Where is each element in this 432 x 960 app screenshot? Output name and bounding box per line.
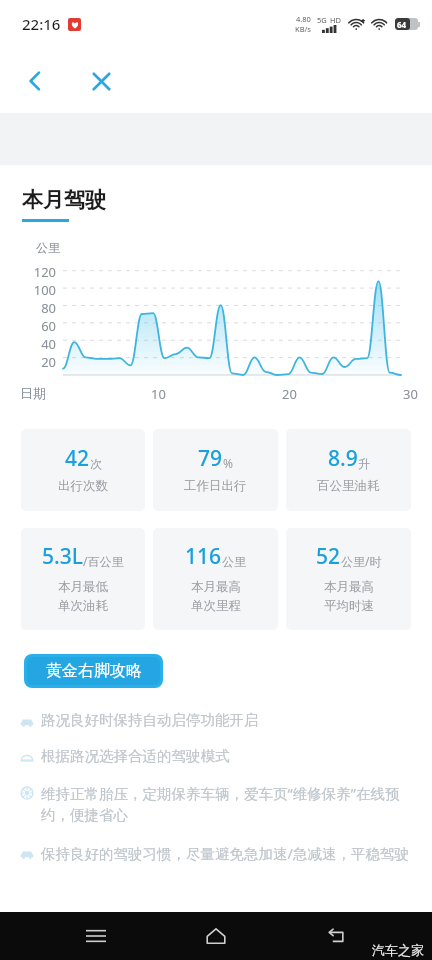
- staticText: 维持正常胎压，定期保养车辆，爱车页“维修保养”在线预 约，便捷省心: [41, 783, 400, 825]
- staticText: 64: [397, 19, 407, 30]
- staticText: HD: [330, 15, 342, 25]
- staticText: 20: [282, 385, 297, 403]
- staticText: 工作日出行: [184, 478, 247, 494]
- button[interactable]: Back: [14, 60, 56, 102]
- staticText: 22:16: [22, 14, 61, 34]
- button[interactable]: 维持正常胎压，定期保养车辆，爱车页“维修保养”在线预 约，便捷省心: [20, 783, 420, 825]
- button[interactable]: 79: [153, 429, 278, 511]
- staticText: 80: [20, 299, 56, 317]
- staticText: 升: [358, 456, 370, 471]
- button[interactable]: 8.9: [286, 429, 411, 511]
- button[interactable]: Back: [312, 912, 360, 960]
- staticText: 公里: [222, 554, 246, 569]
- staticText: 4.80: [296, 14, 311, 24]
- button[interactable]: 52: [286, 528, 411, 630]
- button[interactable]: 路况良好时保持自动启停功能开启: [20, 711, 420, 729]
- button[interactable]: Home: [192, 912, 240, 960]
- staticText: 本月最高: [324, 579, 374, 595]
- staticText: 20: [20, 353, 56, 371]
- staticText: 本月最低: [58, 579, 108, 595]
- staticText: 公里/时: [341, 553, 382, 569]
- staticText: 60: [20, 317, 56, 335]
- button[interactable]: 5.3L: [21, 528, 145, 630]
- staticText: 单次里程: [191, 598, 241, 614]
- staticText: /百公里: [83, 553, 124, 569]
- staticText: 5.3L: [42, 542, 83, 571]
- staticText: 根据路况选择合适的驾驶模式: [41, 747, 230, 765]
- button[interactable]: 116: [153, 528, 278, 630]
- staticText: 本月驾驶: [22, 187, 106, 213]
- staticText: 汽车之家: [372, 942, 424, 958]
- staticText: 40: [20, 335, 56, 353]
- staticText: 5G: [317, 15, 327, 25]
- staticText: 42: [65, 444, 90, 473]
- staticText: 120: [20, 263, 56, 281]
- button[interactable]: 保持良好的驾驶习惯，尽量避免急加速/急减速，平稳驾驶: [20, 843, 420, 863]
- staticText: 出行次数: [58, 478, 108, 494]
- staticText: KB/s: [295, 24, 311, 34]
- staticText: 次: [90, 456, 102, 471]
- button[interactable]: Close: [80, 60, 122, 102]
- staticText: 116: [185, 542, 222, 571]
- staticText: 52: [316, 542, 341, 571]
- staticText: 百公里油耗: [317, 478, 380, 494]
- staticText: 10: [151, 385, 166, 403]
- staticText: 日期: [20, 385, 46, 401]
- button[interactable]: 42: [21, 429, 145, 511]
- button[interactable]: Recent apps: [72, 912, 120, 960]
- staticText: 本月最高: [191, 579, 241, 595]
- staticText: 黄金右脚攻略: [46, 661, 142, 681]
- staticText: 30: [403, 385, 418, 403]
- staticText: 公里: [36, 240, 60, 255]
- staticText: 79: [198, 444, 223, 473]
- staticText: 100: [20, 281, 56, 299]
- button[interactable]: 黄金右脚攻略: [24, 654, 163, 688]
- staticText: 平均时速: [324, 598, 374, 614]
- staticText: %: [223, 455, 233, 471]
- staticText: 8.9: [328, 444, 358, 473]
- staticText: 保持良好的驾驶习惯，尽量避免急加速/急减速，平稳驾驶: [41, 843, 409, 863]
- staticText: 单次油耗: [58, 598, 108, 614]
- staticText: 路况良好时保持自动启停功能开启: [41, 711, 259, 729]
- button[interactable]: 根据路况选择合适的驾驶模式: [20, 747, 420, 765]
